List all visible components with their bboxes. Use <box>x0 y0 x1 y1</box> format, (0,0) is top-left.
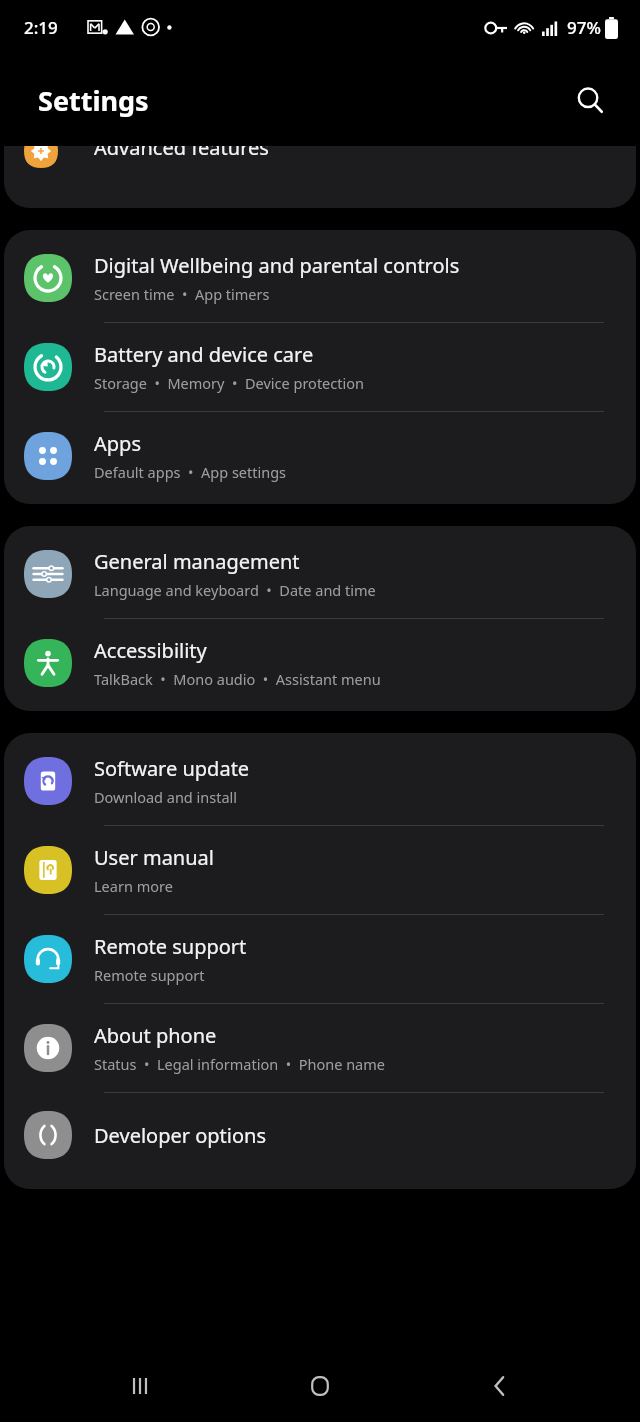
staticText: Digital Wellbeing and parental controls <box>94 252 460 279</box>
staticText: 2:19 <box>24 16 58 39</box>
staticText: About phone <box>94 1022 217 1049</box>
button[interactable]: Remote support <box>4 915 636 1003</box>
button[interactable]: General management <box>4 526 636 618</box>
staticText: Developer options <box>94 1122 267 1149</box>
button[interactable]: Apps <box>4 412 636 504</box>
button[interactable]: User manual <box>4 826 636 914</box>
staticText: General management <box>94 548 300 575</box>
staticText: Download and install <box>94 787 238 807</box>
staticText: Settings <box>38 82 149 119</box>
staticText: Apps <box>94 430 141 457</box>
staticText: Remote support <box>94 933 247 960</box>
button[interactable]: Back <box>460 1350 540 1422</box>
staticText: 97% <box>567 16 601 39</box>
staticText: Learn more <box>94 876 173 896</box>
button[interactable]: Software update <box>4 733 636 825</box>
staticText: Accessibility <box>94 637 207 664</box>
staticText: TalkBack • Mono audio • Assistant menu <box>94 669 381 689</box>
staticText: Status • Legal information • Phone name <box>94 1054 385 1074</box>
staticText: Software update <box>94 755 250 782</box>
button[interactable]: Advanced features <box>4 146 636 182</box>
staticText: Language and keyboard • Date and time <box>94 580 376 600</box>
button[interactable]: Battery and device care <box>4 323 636 411</box>
button[interactable]: Home <box>280 1350 360 1422</box>
button[interactable]: Accessibility <box>4 619 636 711</box>
button[interactable]: Recent apps <box>100 1350 180 1422</box>
staticText: Battery and device care <box>94 341 314 368</box>
button[interactable]: About phone <box>4 1004 636 1092</box>
staticText: Advanced features <box>94 146 269 161</box>
button[interactable]: Search <box>566 76 614 124</box>
button[interactable]: Digital Wellbeing and parental controls <box>4 230 636 322</box>
button[interactable]: Developer options <box>4 1093 636 1189</box>
staticText: User manual <box>94 844 214 871</box>
staticText: Remote support <box>94 965 205 985</box>
staticText: Screen time • App timers <box>94 284 270 304</box>
staticText: Storage • Memory • Device protection <box>94 373 364 393</box>
staticText: Default apps • App settings <box>94 462 287 482</box>
